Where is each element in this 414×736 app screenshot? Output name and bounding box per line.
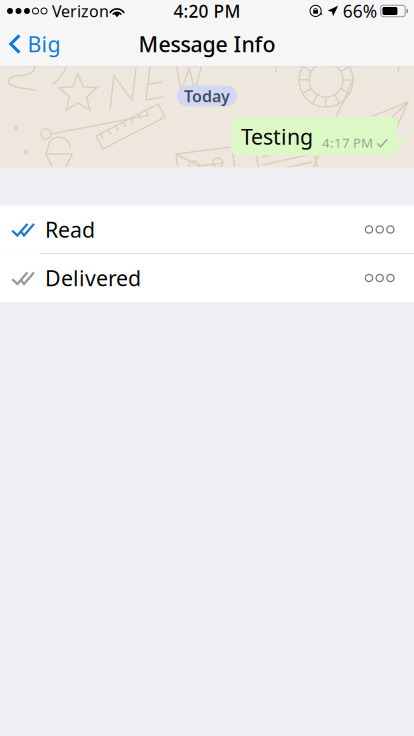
button[interactable]: Big — [0, 22, 70, 66]
staticText: Message Info — [138, 30, 275, 58]
staticText: 4:17 PM — [322, 134, 373, 151]
button[interactable]: Delivered — [0, 254, 414, 302]
staticText: Delivered — [45, 264, 141, 292]
staticText: 66% — [343, 0, 377, 22]
button[interactable]: Read — [0, 205, 414, 253]
staticText: Read — [45, 215, 95, 244]
staticText: Today — [184, 85, 230, 107]
staticText: Testing — [241, 122, 313, 151]
staticText: Big — [27, 30, 60, 58]
staticText: 4:20 PM — [173, 0, 240, 22]
staticText: Verizon — [52, 0, 109, 22]
